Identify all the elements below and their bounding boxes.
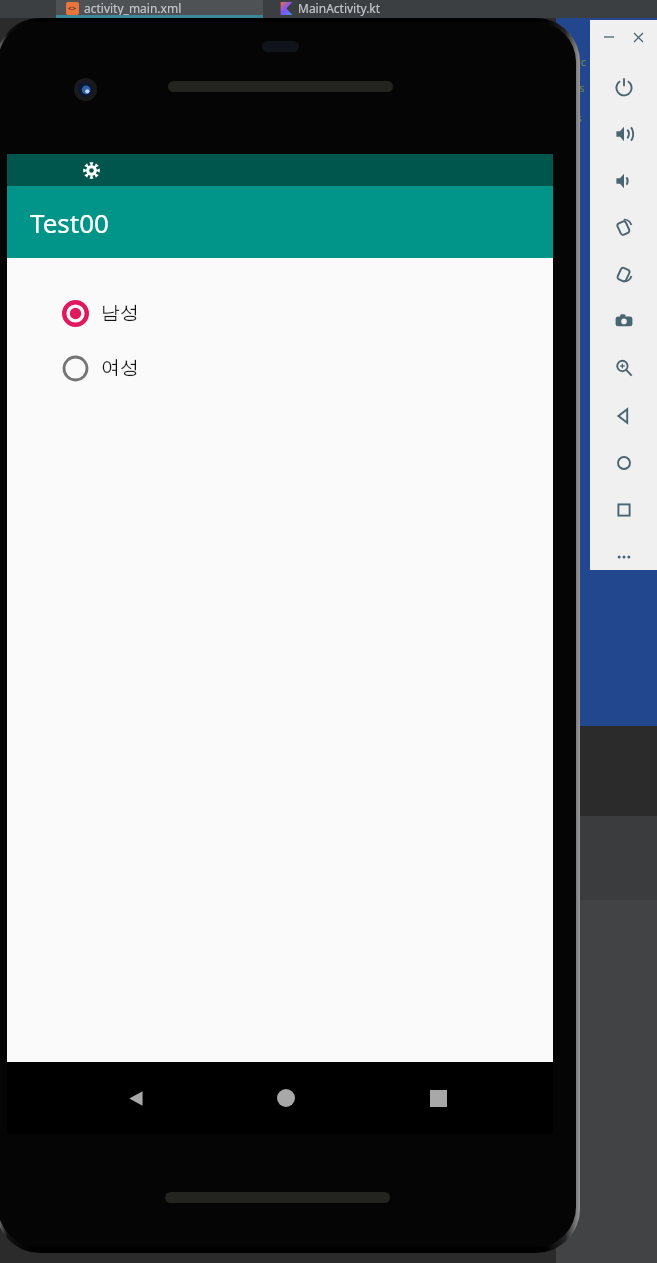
- staticText: es: [572, 80, 586, 95]
- button[interactable]: 남성: [62, 294, 139, 332]
- button[interactable]: <>: [56, 0, 263, 18]
- button[interactable]: Volume down: [611, 168, 637, 194]
- button[interactable]: MainActivity.kt: [266, 0, 446, 18]
- button[interactable]: Back: [611, 403, 637, 429]
- button[interactable]: Rotate right: [611, 262, 637, 288]
- button[interactable]: Home: [611, 450, 637, 476]
- staticText: Test00: [30, 205, 109, 240]
- button[interactable]: Rotate left: [611, 215, 637, 241]
- staticText: s: [576, 110, 583, 125]
- button[interactable]: Back: [115, 1062, 157, 1134]
- button[interactable]: Volume up: [611, 121, 637, 147]
- staticText: 남성: [101, 301, 139, 325]
- button[interactable]: Settings: [75, 154, 107, 186]
- button[interactable]: Recent apps: [417, 1062, 459, 1134]
- button[interactable]: Home: [265, 1062, 307, 1134]
- button[interactable]: Zoom: [611, 355, 637, 381]
- staticText: MainActivity.kt: [298, 0, 381, 16]
- button[interactable]: Power: [611, 74, 637, 100]
- button[interactable]: Take screenshot: [611, 308, 637, 334]
- button[interactable]: More: [611, 544, 637, 570]
- staticText: activity_main.xml: [84, 0, 182, 16]
- button[interactable]: Overview: [611, 497, 637, 523]
- staticText: 여성: [101, 356, 139, 380]
- button[interactable]: Close: [627, 26, 649, 48]
- button[interactable]: 여성: [62, 349, 139, 387]
- button[interactable]: Minimize: [598, 26, 620, 48]
- staticText: <>: [68, 4, 77, 14]
- staticText: rc: [574, 54, 588, 69]
